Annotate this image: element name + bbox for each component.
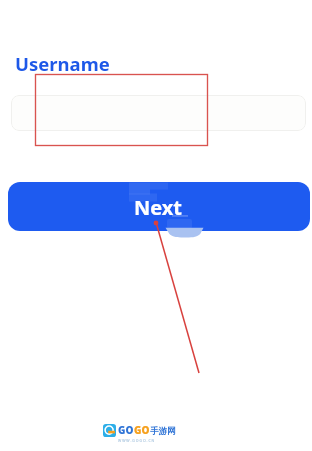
- staticText: Next: [134, 194, 183, 221]
- staticText: GO: [134, 423, 150, 437]
- button[interactable]: Next: [8, 182, 310, 231]
- button[interactable]: Username input field: [11, 95, 306, 131]
- staticText: W W W . G O G O . C N: [118, 438, 155, 443]
- staticText: Username: [15, 51, 110, 76]
- staticText: 手游网: [150, 426, 176, 437]
- staticText: GO: [118, 423, 134, 437]
